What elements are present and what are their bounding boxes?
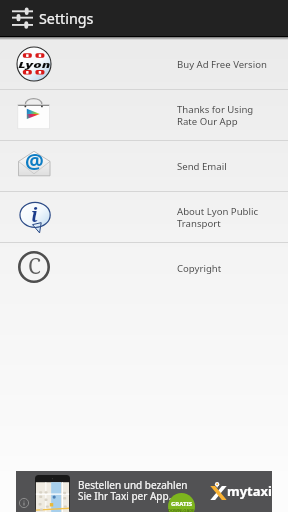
button[interactable]: Ad info	[16, 471, 272, 512]
staticText: C	[28, 252, 41, 281]
staticText: Settings	[39, 9, 94, 28]
staticText: About Lyon Public Transport	[177, 205, 259, 230]
staticText: Thanks for Using Rate Our App	[177, 103, 254, 128]
other: Settings	[12, 7, 33, 29]
staticText: mytaxi	[227, 482, 272, 500]
button[interactable]: Thanks for Using Rate Our App	[0, 90, 288, 140]
button[interactable]: Lyon	[0, 40, 288, 89]
staticText: @	[25, 147, 44, 176]
button[interactable]: i	[0, 192, 288, 242]
other: Ad info	[19, 498, 29, 508]
button[interactable]: C	[0, 243, 288, 293]
staticText: Buy Ad Free Version	[177, 58, 267, 71]
staticText: Bestellen und bezahlen Sie Ihr Taxi per …	[78, 478, 188, 503]
staticText: Copyright	[177, 262, 222, 275]
staticText: DOWNLOADEN	[168, 508, 195, 512]
staticText: i	[31, 202, 38, 228]
staticText: Send Email	[177, 160, 227, 173]
staticText: GRATIS	[171, 500, 193, 508]
staticText: Lyon	[18, 58, 51, 70]
button[interactable]: @	[0, 141, 288, 191]
